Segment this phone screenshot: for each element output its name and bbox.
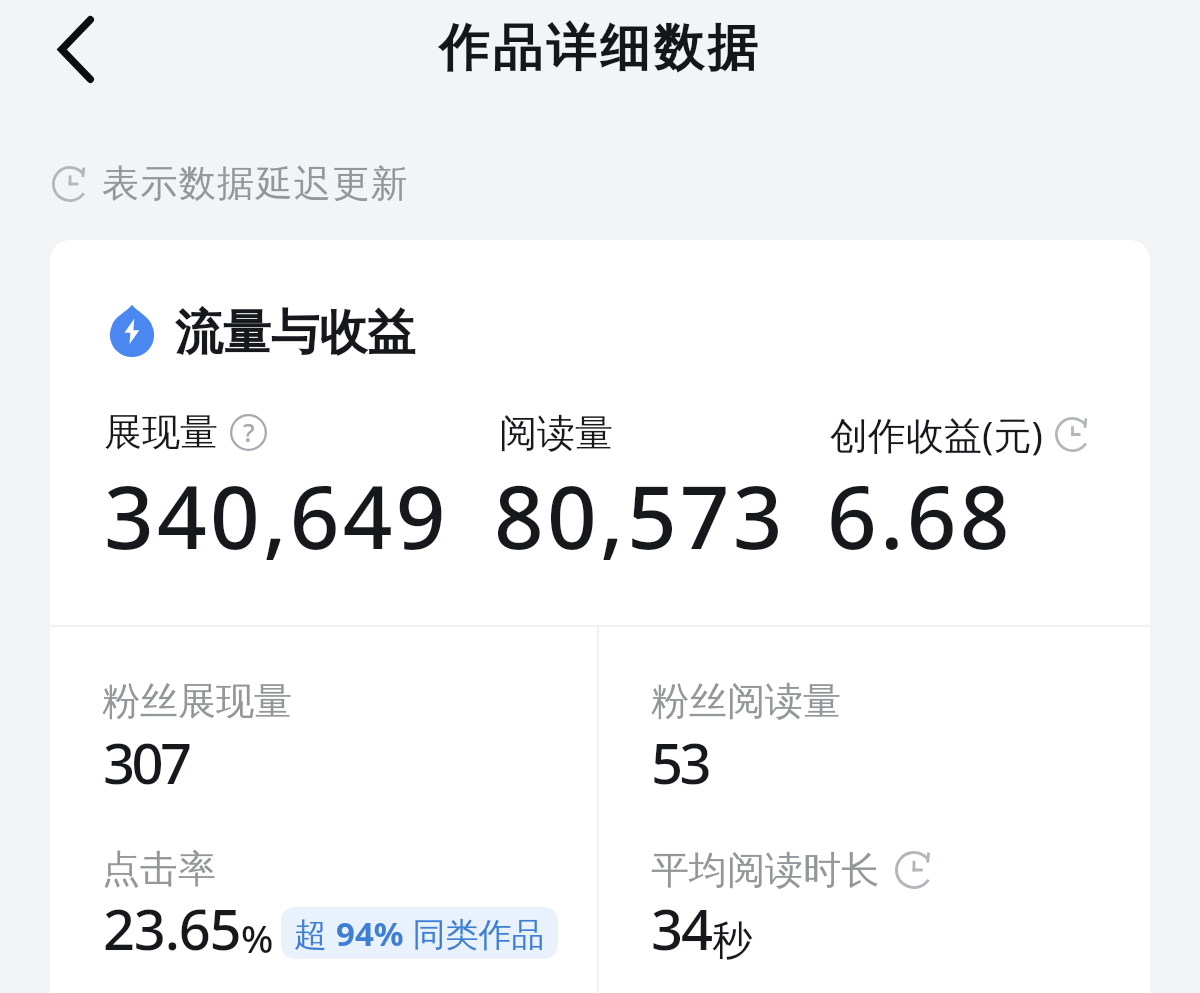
staticText: 作品详细数据	[439, 17, 761, 80]
button[interactable]: Back	[38, 12, 114, 86]
button[interactable]: 粉丝阅读量 53	[615, 650, 1135, 810]
staticText: 粉丝阅读量	[651, 677, 841, 725]
button[interactable]: 展现量 340,649	[90, 390, 460, 555]
staticText: 平均阅读时长	[651, 846, 879, 894]
staticText: 粉丝展现量	[102, 677, 292, 725]
staticText: 80,573	[494, 456, 786, 574]
staticText: 展现量	[104, 408, 218, 456]
staticText: 秒	[712, 915, 752, 965]
staticText: ?	[243, 414, 255, 449]
staticText: 34	[651, 890, 712, 966]
staticText: 阅读量	[499, 409, 613, 457]
button[interactable]: 创作收益 6.68 元	[815, 390, 1135, 555]
staticText: %	[241, 912, 274, 964]
button[interactable]: 展现量说明	[230, 414, 267, 451]
staticText: 点击率	[102, 845, 216, 893]
staticText: 超	[294, 911, 336, 956]
button[interactable]: 超	[281, 907, 558, 959]
staticText: 创作收益(元)	[830, 408, 1043, 460]
staticText: 6.68	[827, 456, 1013, 574]
staticText: 流量与收益	[175, 303, 415, 363]
staticText: 23.65	[103, 890, 241, 966]
staticText: 表示数据延迟更新	[102, 160, 410, 207]
staticText: 307	[103, 724, 189, 800]
button[interactable]: 阅读量 80,573	[480, 390, 810, 555]
button[interactable]: 平均阅读时长 34 秒	[615, 820, 1135, 980]
staticText: 340,649	[104, 456, 449, 574]
staticText: 同类作品	[404, 911, 545, 956]
button[interactable]: 点击率 23.65%	[70, 820, 590, 980]
staticText: 53	[651, 724, 709, 800]
button[interactable]: 粉丝展现量 307	[70, 650, 590, 810]
staticText: 94%	[336, 911, 404, 956]
